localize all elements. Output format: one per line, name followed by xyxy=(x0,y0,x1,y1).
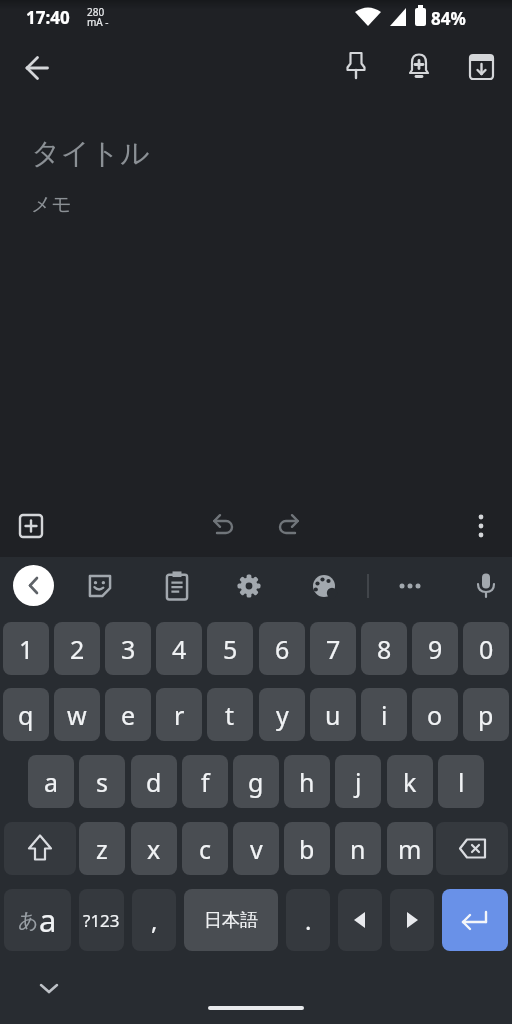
button[interactable]: 5 xyxy=(207,622,253,675)
button[interactable]: m xyxy=(387,822,433,875)
button[interactable] xyxy=(338,889,382,951)
staticText: h xyxy=(299,765,315,799)
button[interactable]: w xyxy=(54,688,100,741)
button[interactable] xyxy=(13,44,61,92)
button[interactable]: z xyxy=(79,822,125,875)
button[interactable]: f xyxy=(182,755,228,808)
button[interactable]: あ xyxy=(4,889,71,951)
button[interactable] xyxy=(332,44,380,92)
button[interactable]: a xyxy=(28,755,74,808)
button[interactable]: 9 xyxy=(412,622,458,675)
button[interactable]: 4 xyxy=(156,622,202,675)
staticText: c xyxy=(199,832,212,866)
button[interactable]: j xyxy=(335,755,381,808)
staticText: u xyxy=(325,698,341,732)
button[interactable] xyxy=(153,564,197,608)
staticText: 2 xyxy=(70,632,85,666)
staticText: e xyxy=(121,698,136,732)
staticText: w xyxy=(67,698,87,732)
button[interactable]: q xyxy=(3,688,49,741)
button[interactable]: . xyxy=(286,889,330,951)
button[interactable]: b xyxy=(284,822,330,875)
staticText: v xyxy=(250,832,263,866)
staticText: f xyxy=(201,765,210,799)
button[interactable]: 3 xyxy=(105,622,151,675)
button[interactable]: 2 xyxy=(54,622,100,675)
staticText: メモ xyxy=(31,192,72,217)
button[interactable]: ?123 xyxy=(79,889,124,951)
button[interactable] xyxy=(436,822,508,875)
staticText: k xyxy=(403,765,417,799)
staticText: p xyxy=(478,698,494,732)
button[interactable]: l xyxy=(438,755,484,808)
button[interactable]: x xyxy=(131,822,177,875)
button[interactable] xyxy=(13,565,54,606)
staticText: o xyxy=(427,698,443,732)
staticText: 17:40 xyxy=(26,6,70,29)
button[interactable]: s xyxy=(79,755,125,808)
button[interactable] xyxy=(442,889,508,951)
staticText: 7 xyxy=(326,632,341,666)
staticText: s xyxy=(96,765,108,799)
staticText: l xyxy=(458,765,465,799)
button[interactable]: o xyxy=(412,688,458,741)
button[interactable] xyxy=(263,502,311,550)
button[interactable]: k xyxy=(387,755,433,808)
staticText: d xyxy=(146,765,162,799)
staticText: 8 xyxy=(377,632,392,666)
staticText: b xyxy=(299,832,315,866)
staticText: タイトル xyxy=(31,135,150,172)
staticText: t xyxy=(225,698,235,732)
staticText: 3 xyxy=(121,632,136,666)
button[interactable]: i xyxy=(361,688,407,741)
staticText: 5 xyxy=(223,632,238,666)
staticText: n xyxy=(350,832,366,866)
staticText: a xyxy=(44,765,59,799)
staticText: i xyxy=(381,698,388,732)
button[interactable]: g xyxy=(233,755,279,808)
button[interactable] xyxy=(457,44,505,92)
button[interactable] xyxy=(388,564,432,608)
button[interactable]: r xyxy=(156,688,202,741)
staticText: 280 xyxy=(87,5,105,19)
staticText: z xyxy=(96,832,108,866)
button[interactable]: t xyxy=(207,688,253,741)
button[interactable] xyxy=(76,564,120,608)
button[interactable]: c xyxy=(182,822,228,875)
button[interactable]: h xyxy=(284,755,330,808)
button[interactable]: p xyxy=(463,688,509,741)
button[interactable] xyxy=(4,822,76,875)
staticText: 0 xyxy=(479,632,494,666)
button[interactable]: 6 xyxy=(259,622,305,675)
button[interactable] xyxy=(300,564,344,608)
button[interactable]: u xyxy=(310,688,356,741)
button[interactable] xyxy=(225,564,269,608)
button[interactable]: 0 xyxy=(463,622,509,675)
staticText: mA - xyxy=(87,15,109,29)
button[interactable] xyxy=(462,564,506,608)
button[interactable]: , xyxy=(132,889,176,951)
button[interactable]: v xyxy=(233,822,279,875)
button[interactable] xyxy=(7,502,55,550)
staticText: g xyxy=(248,765,264,799)
staticText: ?123 xyxy=(83,909,120,932)
button[interactable]: 8 xyxy=(361,622,407,675)
staticText: 9 xyxy=(428,632,443,666)
button[interactable]: 7 xyxy=(310,622,356,675)
staticText: 84% xyxy=(431,7,466,30)
button[interactable] xyxy=(201,502,249,550)
staticText: r xyxy=(174,698,185,732)
button[interactable]: e xyxy=(105,688,151,741)
staticText: 4 xyxy=(172,632,187,666)
button[interactable]: d xyxy=(131,755,177,808)
button[interactable] xyxy=(457,502,505,550)
button[interactable]: y xyxy=(259,688,305,741)
staticText: q xyxy=(18,698,34,732)
button[interactable]: 日本語 xyxy=(184,889,278,951)
staticText: a xyxy=(39,899,57,941)
button[interactable]: 1 xyxy=(3,622,49,675)
button[interactable] xyxy=(390,889,434,951)
staticText: 1 xyxy=(19,632,34,666)
button[interactable]: n xyxy=(335,822,381,875)
button[interactable] xyxy=(395,44,443,92)
